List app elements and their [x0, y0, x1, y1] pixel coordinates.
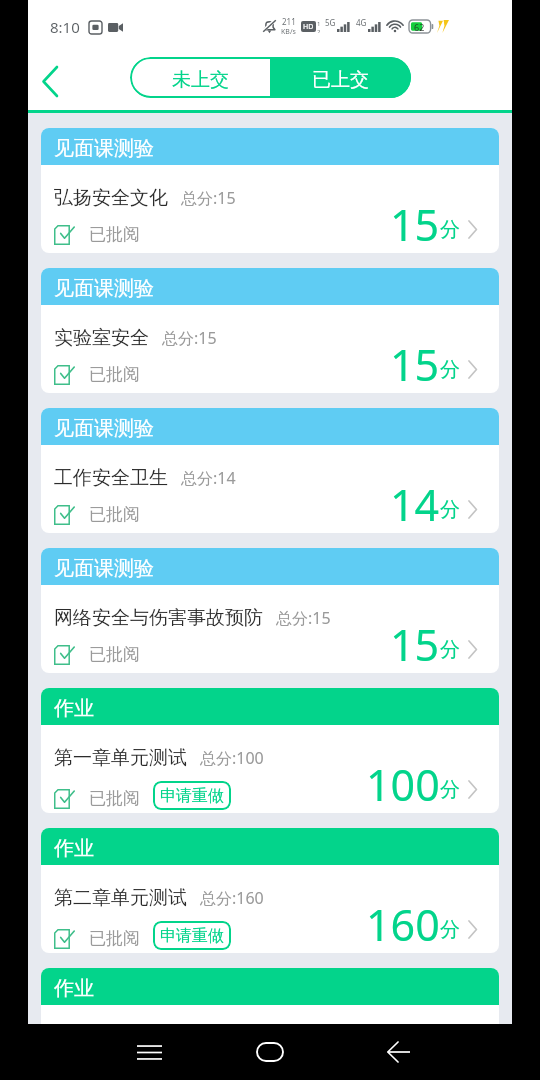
staticText: 工作安全卫生 [54, 466, 168, 490]
button[interactable]: 作业 [41, 968, 499, 1024]
staticText: 160 [366, 895, 440, 953]
button[interactable]: 作业 [41, 828, 499, 953]
button[interactable]: 已上交 [270, 57, 411, 98]
button[interactable]: Recent apps [119, 1024, 179, 1080]
staticText: 已上交 [312, 68, 369, 92]
staticText: 总分:15 [162, 327, 217, 349]
staticText: 2 [317, 28, 321, 33]
staticText: 分 [440, 637, 460, 662]
staticText: 已批阅 [89, 504, 140, 525]
button[interactable]: 申请重做 [153, 921, 231, 950]
staticText: 见面课测验 [54, 276, 154, 301]
button[interactable]: 见面课测验 [41, 128, 499, 253]
staticText: 见面课测验 [54, 136, 154, 161]
staticText: 已批阅 [89, 788, 140, 809]
staticText: 第一章单元测试 [54, 746, 187, 770]
staticText: 总分:100 [200, 747, 264, 769]
staticText: 分 [440, 777, 460, 802]
staticText: 作业 [54, 976, 94, 1001]
staticText: 已批阅 [89, 928, 140, 949]
staticText: 已批阅 [89, 364, 140, 385]
staticText: 分 [440, 357, 460, 382]
staticText: 15 [390, 195, 440, 253]
button[interactable]: 未上交 [130, 57, 270, 98]
button[interactable]: 见面课测验 [41, 268, 499, 393]
staticText: 申请重做 [160, 926, 224, 946]
staticText: 网络安全与伤害事故预防 [54, 606, 263, 630]
staticText: 见面课测验 [54, 416, 154, 441]
staticText: 总分:14 [181, 467, 236, 489]
staticText: 弘扬安全文化 [54, 186, 168, 210]
button[interactable]: 见面课测验 [41, 408, 499, 533]
staticText: 14 [390, 475, 440, 533]
staticText: 分 [440, 497, 460, 522]
staticText: 第二章单元测试 [54, 886, 187, 910]
staticText: 分 [440, 217, 460, 242]
staticText: 总分:15 [276, 607, 331, 629]
staticText: 已批阅 [89, 224, 140, 245]
staticText: 62 [414, 21, 425, 33]
staticText: 100 [366, 755, 440, 813]
staticText: 总分:15 [181, 187, 236, 209]
staticText: 作业 [54, 696, 94, 721]
button[interactable]: Back [28, 45, 78, 110]
staticText: 已批阅 [89, 644, 140, 665]
staticText: 211 [282, 16, 296, 27]
button[interactable]: Back [368, 1024, 428, 1080]
staticText: 15 [390, 335, 440, 393]
staticText: 15 [390, 615, 440, 673]
button[interactable]: 作业 [41, 688, 499, 813]
staticText: 5G [325, 17, 336, 28]
staticText: 作业 [54, 836, 94, 861]
staticText: 未上交 [172, 68, 229, 92]
staticText: 实验室安全 [54, 326, 149, 350]
staticText: 1 [317, 20, 321, 28]
staticText: 申请重做 [160, 786, 224, 806]
staticText: 见面课测验 [54, 556, 154, 581]
staticText: 分 [440, 917, 460, 942]
staticText: 总分:160 [200, 887, 264, 909]
staticText: HD [303, 22, 314, 32]
button[interactable]: 见面课测验 [41, 548, 499, 673]
staticText: KB/s [281, 27, 296, 37]
button[interactable]: Home [240, 1024, 300, 1080]
staticText: 8:10 [50, 17, 80, 37]
button[interactable]: 申请重做 [153, 781, 231, 810]
staticText: 4G [356, 17, 367, 28]
